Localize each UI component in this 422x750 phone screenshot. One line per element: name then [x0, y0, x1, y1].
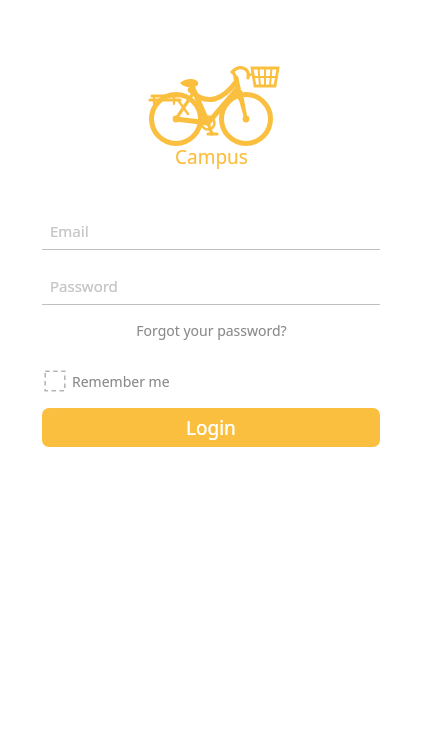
button[interactable]: Email [42, 212, 380, 250]
button[interactable]: Login [42, 408, 380, 447]
staticText: Email [50, 221, 89, 241]
staticText: Forgot your password? [136, 321, 287, 340]
button[interactable]: Remember me [44, 368, 170, 394]
staticText: Remember me [72, 372, 170, 391]
staticText: Campus [175, 144, 248, 170]
button[interactable]: Password [42, 267, 380, 305]
staticText: Password [50, 276, 118, 296]
button[interactable]: Forgot your password? [128, 318, 295, 343]
staticText: Login [186, 415, 236, 441]
